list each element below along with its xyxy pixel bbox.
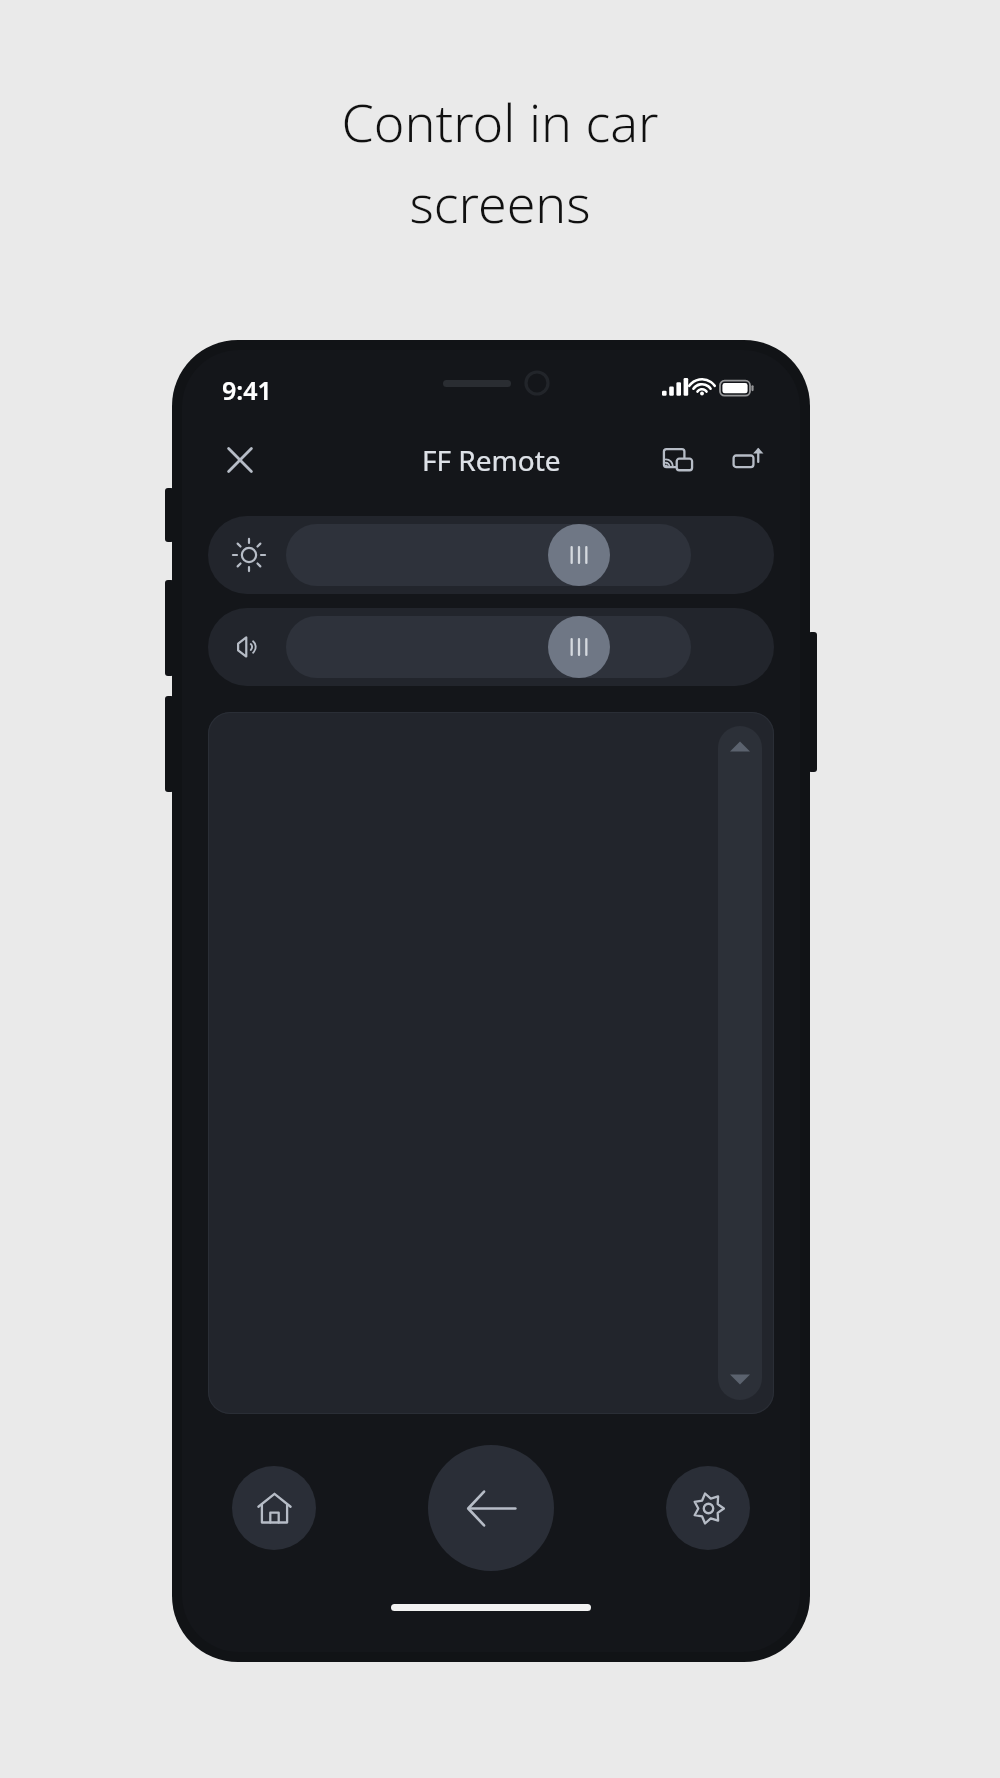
button[interactable]: Volume [208,608,774,686]
button[interactable]: Brightness [208,516,774,594]
button[interactable]: Home [232,1466,316,1550]
button[interactable]: Settings [666,1466,750,1550]
button[interactable]: Close [212,432,268,488]
button[interactable]: Back [428,1445,554,1571]
staticText: 9:41 [222,373,272,407]
button[interactable]: Present to external display [720,432,776,488]
staticText: Control in car screens [341,86,659,239]
staticText: FF Remote [422,441,561,479]
button[interactable]: Scroll [718,726,762,1400]
button[interactable]: Cast to device [650,432,706,488]
button[interactable]: Touchpad [208,712,774,1414]
